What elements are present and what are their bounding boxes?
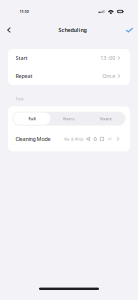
staticText: 11:10	[19, 9, 28, 14]
staticText: Start	[15, 54, 27, 62]
staticText: Task	[15, 96, 23, 101]
button[interactable]: Routine	[87, 112, 125, 125]
button[interactable]: Full	[13, 112, 50, 125]
button[interactable]: Cleaning Mode	[8, 126, 130, 151]
staticText: Vac & Mop	[64, 136, 83, 142]
staticText: Rooms	[63, 116, 75, 121]
button[interactable]: Back	[1, 23, 17, 37]
staticText: ×1	[107, 136, 111, 142]
staticText: Scheduling	[58, 26, 86, 34]
button[interactable]: Rooms	[50, 112, 88, 125]
button[interactable]: Repeat	[8, 67, 130, 85]
staticText: Full	[28, 116, 35, 121]
staticText: Once	[102, 72, 115, 80]
button[interactable]: Done	[121, 23, 137, 37]
staticText: Routine	[100, 116, 112, 121]
button[interactable]: Start	[8, 49, 130, 67]
staticText: Cleaning Mode	[15, 135, 50, 142]
staticText: 13 : 00	[100, 54, 115, 62]
staticText: Repeat	[15, 72, 32, 80]
